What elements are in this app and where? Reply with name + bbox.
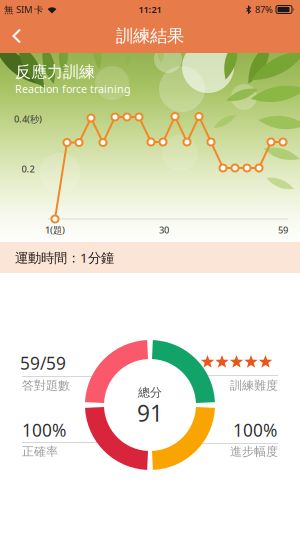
staticText: 總分 — [138, 385, 162, 400]
staticText: 正確率 — [22, 444, 58, 459]
staticText: 11:21 — [138, 3, 161, 16]
staticText: 1(題) — [45, 224, 65, 236]
staticText: 進步幅度 — [230, 444, 278, 459]
staticText: 答對題數 — [22, 378, 70, 393]
staticText: 0.2 — [21, 163, 34, 175]
staticText: 運動時間：1分鐘 — [15, 249, 114, 266]
staticText: 91 — [137, 398, 163, 428]
staticText: 87% — [255, 3, 273, 16]
staticText: 30 — [159, 224, 169, 236]
staticText: 訓練結果 — [116, 25, 184, 47]
staticText: 訓練難度 — [230, 378, 278, 393]
staticText: Reaction force training — [15, 82, 131, 96]
staticText: 100% — [22, 418, 66, 441]
staticText: 59/59 — [20, 351, 66, 374]
button[interactable] — [0, 19, 32, 53]
staticText: 59 — [278, 224, 288, 236]
button[interactable] — [200, 355, 272, 369]
staticText: 0.4(秒) — [14, 113, 42, 125]
staticText: 反應力訓練 — [15, 62, 95, 82]
staticText: 無 SIM 卡 — [4, 3, 43, 16]
staticText: 100% — [233, 418, 277, 441]
